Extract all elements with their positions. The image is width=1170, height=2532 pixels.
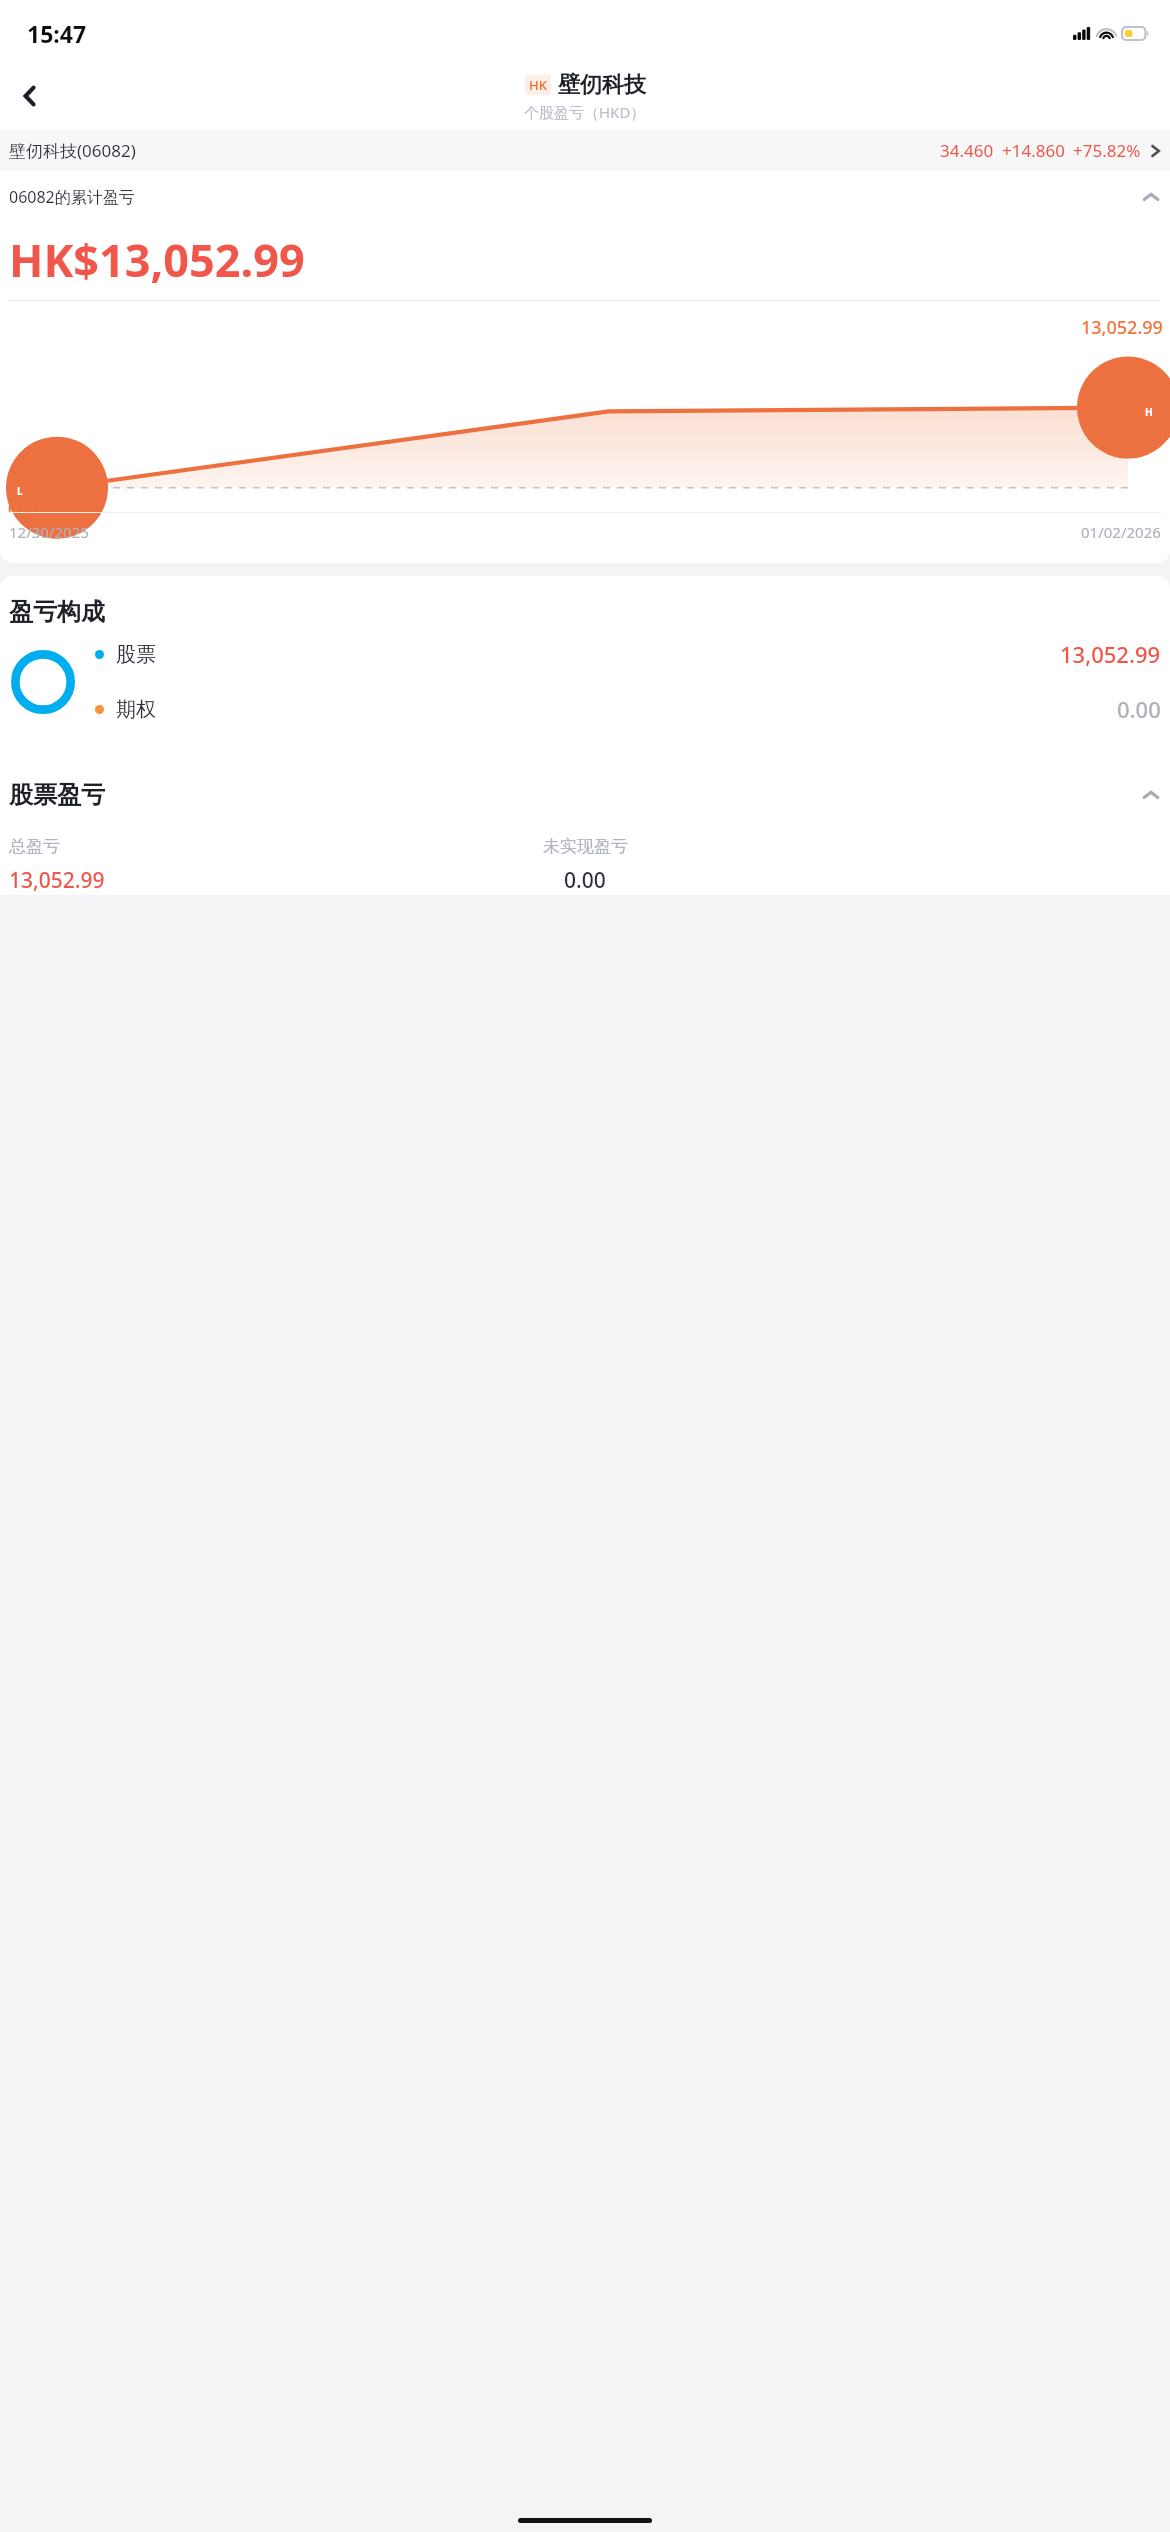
staticText: 壁仞科技(06082) [9,139,136,162]
button[interactable]: 股票盈亏 [0,770,1170,820]
staticText: +14.860 [1002,139,1065,162]
button[interactable]: Back [4,70,56,122]
staticText: 0.00 [8,498,40,512]
staticText: 盈亏构成 [9,597,105,627]
button[interactable]: 06082的累计盈亏 [0,171,1170,223]
staticText: 股票 [116,642,156,667]
staticText: 15:47 [27,18,87,49]
staticText: 12/30/2025 [9,522,89,542]
staticText: 0.00 [1117,694,1161,724]
staticText: L [17,484,23,498]
button[interactable]: 壁仞科技(06082) [0,130,1170,171]
staticText: 06082的累计盈亏 [9,186,135,208]
staticText: 13,052.99 [1081,315,1163,340]
staticText: 股票盈亏 [9,780,105,810]
staticText: HK [529,76,547,94]
staticText: 34.460 [940,139,994,162]
staticText: 0.00 [564,866,606,895]
staticText: HK$13,052.99 [9,229,305,290]
staticText: 01/02/2026 [1081,522,1161,542]
staticText: 期权 [116,697,156,722]
staticText: +75.82% [1073,139,1141,162]
staticText: 壁仞科技 [558,71,646,99]
staticText: 个股盈亏（HKD） [524,102,646,122]
staticText: 13,052.99 [9,866,105,895]
staticText: H [1145,405,1153,419]
staticText: 未实现盈亏 [543,836,628,857]
staticText: 13,052.99 [1060,639,1161,669]
staticText: 总盈亏 [9,836,60,857]
